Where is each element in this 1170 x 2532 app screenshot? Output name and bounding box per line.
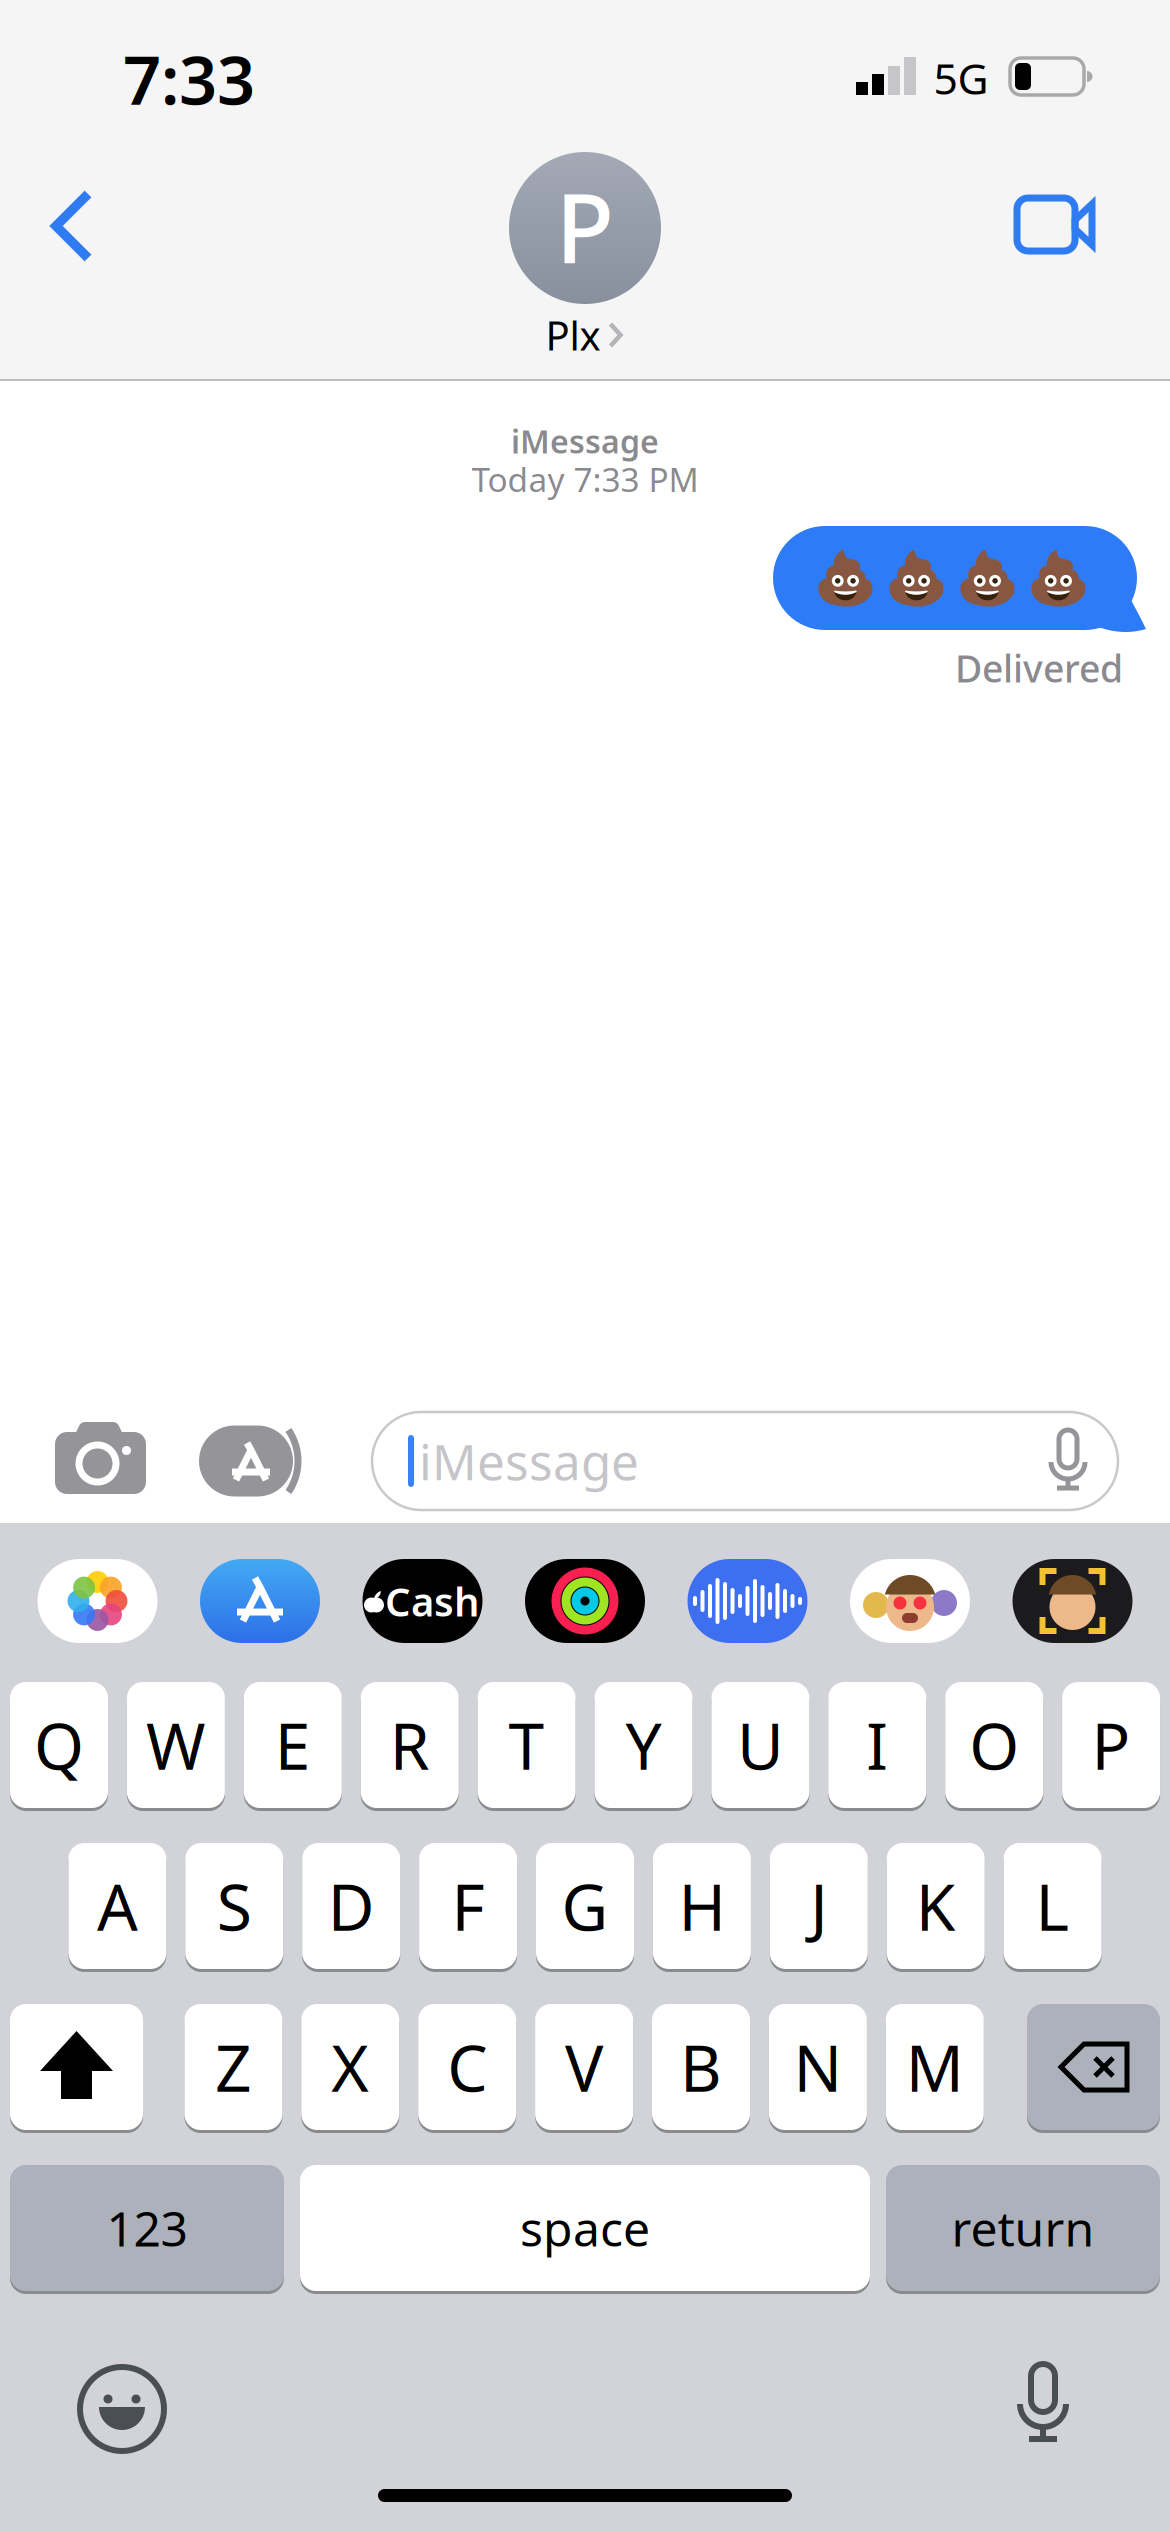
button[interactable]: return	[886, 2163, 1160, 2292]
staticText: return	[951, 2196, 1094, 2260]
button[interactable]: O	[945, 1680, 1043, 1809]
staticText: W	[146, 1702, 206, 1787]
button[interactable]: G	[536, 1841, 634, 1970]
button[interactable]: space	[300, 2163, 870, 2292]
staticText: Z	[215, 2024, 252, 2109]
button[interactable]: B	[652, 2002, 750, 2131]
button[interactable]: Apple Cash	[362, 1559, 482, 1643]
staticText: X	[331, 2024, 369, 2109]
button[interactable]: F	[419, 1841, 517, 1970]
button[interactable]: Apps	[195, 1416, 325, 1506]
staticText: iMessage	[511, 420, 659, 462]
button[interactable]: D	[302, 1841, 400, 1970]
staticText: 5G	[933, 50, 988, 106]
staticText: iMessage	[419, 1428, 639, 1494]
button[interactable]: Delete	[1027, 2002, 1160, 2131]
staticText: J	[810, 1863, 827, 1948]
button[interactable]: Memoji	[1012, 1559, 1132, 1643]
staticText: C	[447, 2024, 487, 2109]
staticText: L	[1036, 1863, 1070, 1948]
button[interactable]: M	[886, 2002, 984, 2131]
button[interactable]: X	[301, 2002, 399, 2131]
staticText: E	[275, 1702, 311, 1787]
staticText: U	[737, 1702, 784, 1787]
staticText: P	[555, 162, 614, 290]
staticText: 7:33	[123, 35, 255, 123]
button[interactable]: A	[68, 1841, 166, 1970]
button[interactable]: P	[1062, 1680, 1160, 1809]
button[interactable]: N	[769, 2002, 867, 2131]
staticText: Q	[34, 1702, 84, 1787]
button[interactable]: Dictation	[988, 2351, 1098, 2461]
button[interactable]: Voice messages	[687, 1559, 807, 1643]
staticText: P	[1092, 1702, 1131, 1787]
button[interactable]: V	[535, 2002, 633, 2131]
button[interactable]: Camera	[40, 1414, 160, 1514]
button[interactable]: K	[887, 1841, 985, 1970]
staticText: B	[680, 2024, 722, 2109]
staticText: A	[97, 1863, 138, 1948]
button[interactable]: P	[485, 150, 685, 360]
button[interactable]: Y	[594, 1680, 692, 1809]
staticText: H	[678, 1863, 725, 1948]
button[interactable]: Fitness	[525, 1559, 645, 1643]
button[interactable]: iMessage	[372, 1412, 1118, 1510]
staticText: Today 7:33 PM	[471, 457, 698, 501]
staticText: 123	[106, 2196, 187, 2260]
staticText: Plx	[545, 308, 600, 361]
staticText: I	[866, 1702, 888, 1787]
staticText: Cash	[385, 1574, 480, 1627]
button[interactable]: E	[244, 1680, 342, 1809]
button[interactable]: T	[478, 1680, 576, 1809]
staticText: Y	[625, 1702, 661, 1787]
button[interactable]: W	[127, 1680, 225, 1809]
button[interactable]: Photos	[37, 1559, 157, 1643]
staticText: S	[217, 1863, 252, 1948]
button[interactable]: Emoji	[67, 2354, 177, 2464]
button[interactable]: Z	[184, 2002, 282, 2131]
staticText: N	[793, 2024, 842, 2109]
staticText: G	[561, 1863, 608, 1948]
staticText: O	[969, 1702, 1019, 1787]
button[interactable]: Dictate	[1028, 1418, 1108, 1502]
button[interactable]: J	[770, 1841, 868, 1970]
staticText: V	[565, 2024, 603, 2109]
button[interactable]: L	[1004, 1841, 1102, 1970]
button[interactable]: App Store	[200, 1559, 320, 1643]
staticText: D	[328, 1863, 375, 1948]
staticText: R	[390, 1702, 430, 1787]
staticText: 💩💩💩💩	[813, 548, 1091, 608]
button[interactable]: R	[361, 1680, 459, 1809]
staticText: space	[520, 2196, 650, 2260]
button[interactable]: I	[828, 1680, 926, 1809]
button[interactable]: H	[653, 1841, 751, 1970]
button[interactable]: S	[185, 1841, 283, 1970]
staticText: F	[452, 1863, 485, 1948]
button[interactable]: Back	[28, 188, 118, 264]
button[interactable]: Q	[10, 1680, 108, 1809]
staticText: M	[906, 2024, 964, 2109]
button[interactable]: Memoji stickers	[850, 1559, 970, 1643]
staticText: K	[916, 1863, 956, 1948]
button[interactable]: Shift	[10, 2002, 143, 2131]
staticText: T	[509, 1702, 545, 1787]
button[interactable]: FaceTime	[1015, 196, 1099, 256]
staticText: Delivered	[955, 643, 1123, 693]
button[interactable]: U	[711, 1680, 809, 1809]
button[interactable]: 123	[10, 2163, 284, 2292]
button[interactable]: C	[418, 2002, 516, 2131]
